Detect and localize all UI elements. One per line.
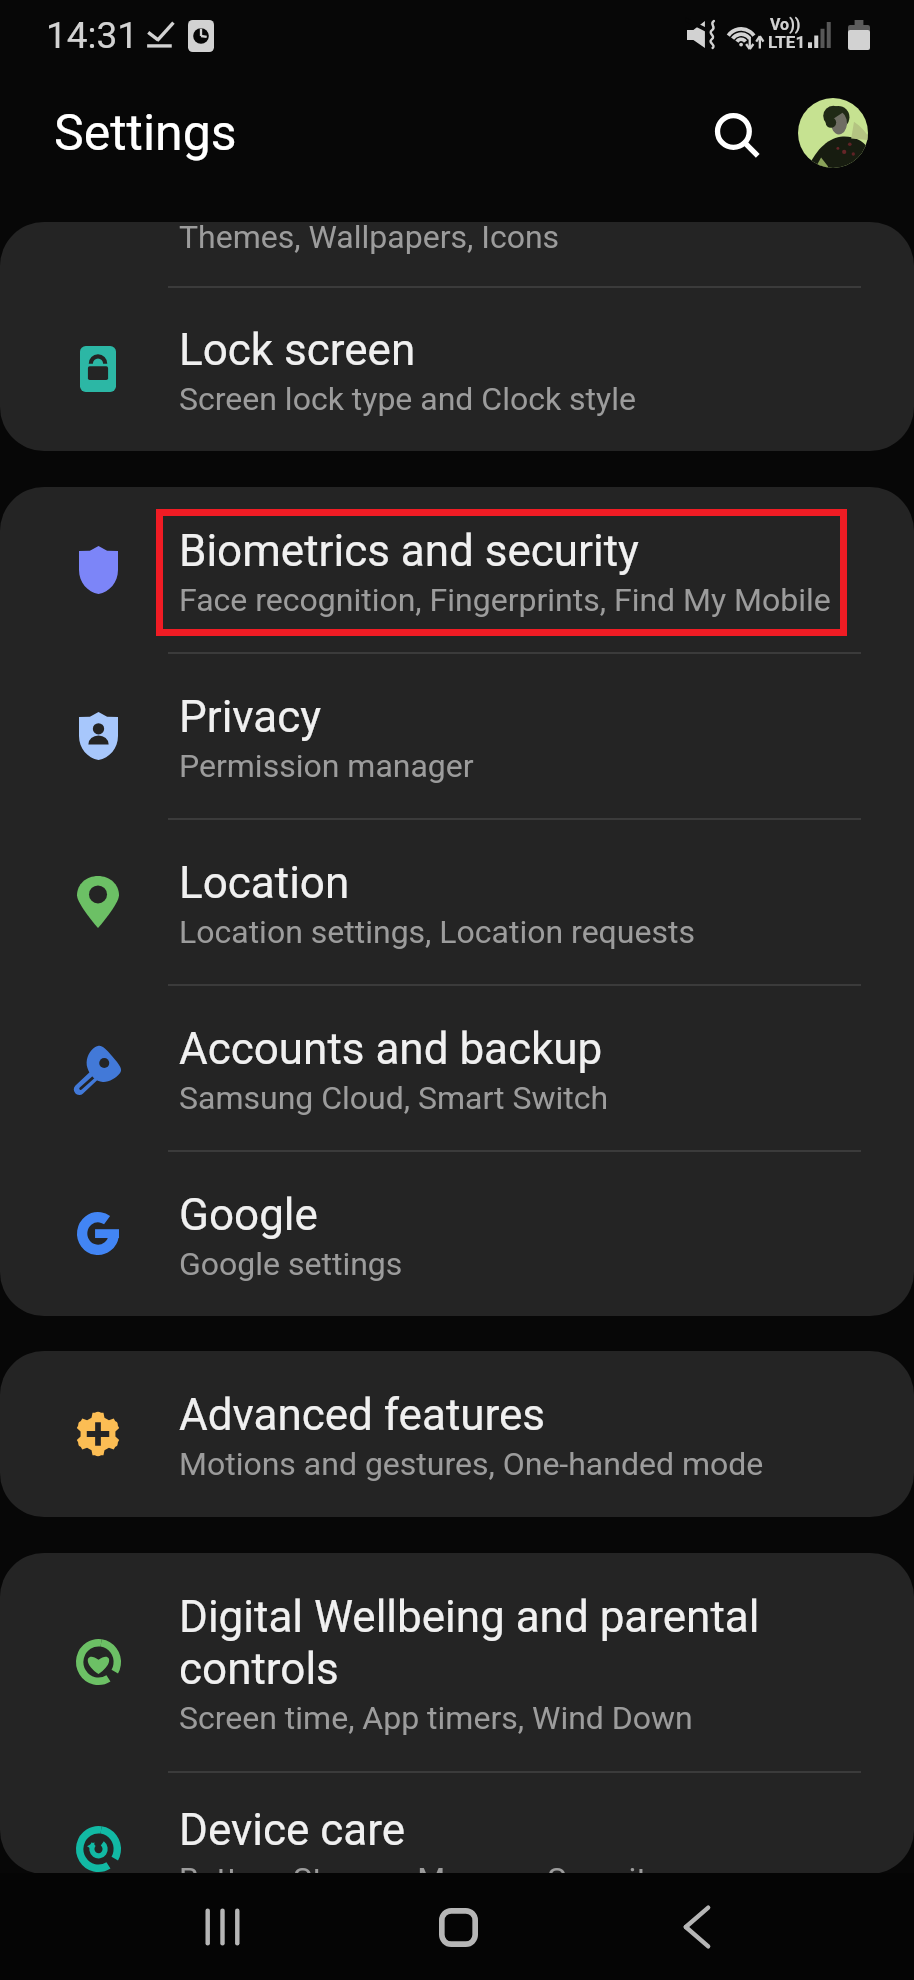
button[interactable]: Advanced features (0, 1351, 914, 1517)
button[interactable]: Profile (798, 98, 868, 168)
staticText: 14:31 (46, 14, 139, 57)
button[interactable]: Privacy (0, 653, 914, 818)
button[interactable]: Search (702, 100, 774, 172)
staticText: Battery, Storage, Memory, Security (179, 1860, 662, 1898)
staticText: Screen lock type and Clock style (179, 380, 636, 418)
staticText: Lock screen (179, 324, 416, 376)
staticText: LTE1 (768, 32, 806, 52)
button[interactable]: Digital Wellbeing and parental controls (0, 1553, 914, 1771)
staticText: Privacy (179, 691, 322, 743)
button[interactable]: Home (403, 1892, 513, 1962)
staticText: Settings (54, 104, 237, 163)
button[interactable]: Biometrics and security (0, 487, 914, 652)
staticText: Device care (179, 1804, 406, 1856)
staticText: Themes, Wallpapers, Icons (179, 218, 560, 256)
staticText: Samsung Cloud, Smart Switch (179, 1079, 609, 1117)
staticText: Google settings (179, 1245, 403, 1283)
staticText: Location settings, Location requests (179, 913, 695, 951)
button[interactable]: Accounts and backup (0, 985, 914, 1150)
staticText: Accounts and backup (179, 1023, 603, 1075)
staticText: Digital Wellbeing and parental controls (179, 1591, 760, 1695)
staticText: Motions and gestures, One-handed mode (179, 1445, 764, 1483)
staticText: Biometrics and security (179, 525, 639, 577)
staticText: Permission manager (179, 747, 474, 785)
staticText: Location (179, 857, 350, 909)
button[interactable]: Lock screen (0, 286, 914, 451)
staticText: Screen time, App timers, Wind Down (179, 1699, 693, 1737)
staticText: Google (179, 1189, 318, 1241)
button[interactable]: Device care (0, 1766, 914, 1931)
button[interactable]: Google (0, 1151, 914, 1316)
button[interactable]: Recent apps (167, 1892, 277, 1962)
staticText: Face recognition, Fingerprints, Find My … (179, 581, 831, 619)
button[interactable]: Themes, Wallpapers, Icons (0, 222, 914, 286)
staticText: Advanced features (179, 1389, 546, 1441)
button[interactable]: Back (642, 1892, 752, 1962)
staticText: Vo)) (770, 15, 801, 34)
button[interactable]: Location (0, 819, 914, 984)
